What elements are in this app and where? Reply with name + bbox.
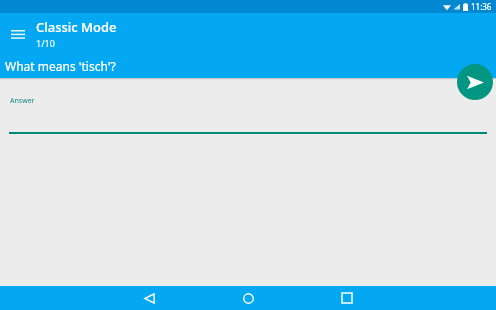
staticText: 11:36: [471, 1, 492, 12]
staticText: Classic Mode: [36, 18, 117, 36]
button[interactable]: Open navigation menu: [0, 16, 36, 52]
button[interactable]: Send answer: [457, 64, 493, 100]
staticText: What means 'tisch'?: [5, 58, 116, 74]
button[interactable]: Home: [233, 286, 263, 310]
staticText: 1/10: [36, 37, 55, 49]
button[interactable]: Recent apps: [332, 286, 362, 310]
staticText: Answer: [10, 96, 35, 106]
button[interactable]: [9, 117, 487, 134]
button[interactable]: Back: [134, 286, 164, 310]
